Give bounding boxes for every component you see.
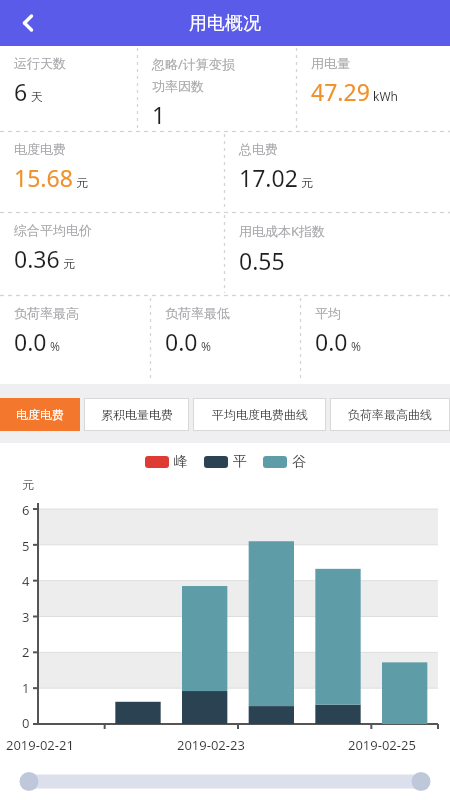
staticText: 4 (22, 572, 30, 590)
staticText: 6 (22, 501, 30, 519)
staticText: 忽略/计算变损 (152, 55, 235, 73)
staticText: 累积电量电费 (101, 407, 173, 422)
staticText: 平均电度电费曲线 (212, 407, 308, 422)
staticText: 2 (22, 643, 30, 661)
staticText: 0.0 (165, 326, 198, 357)
button[interactable]: Back (8, 3, 48, 43)
staticText: % (201, 338, 211, 354)
staticText: 3 (22, 608, 30, 626)
staticText: 平 (233, 453, 247, 471)
staticText: 元 (63, 256, 75, 271)
staticText: 0.0 (315, 326, 348, 357)
button[interactable]: 平均电度电费曲线 (193, 398, 326, 431)
staticText: 2019-02-23 (177, 736, 245, 754)
staticText: 1 (22, 679, 30, 697)
staticText: 0.0 (14, 326, 47, 357)
button[interactable]: 负荷率最高曲线 (330, 398, 450, 431)
staticText: 谷 (292, 453, 306, 471)
staticText: 电度电费 (16, 407, 64, 422)
staticText: 负荷率最高 (14, 305, 79, 321)
staticText: 0.36 (14, 243, 60, 274)
staticText: 用电量 (311, 55, 350, 71)
staticText: 5 (22, 537, 30, 555)
staticText: 2019-02-25 (348, 736, 416, 754)
staticText: 元 (22, 477, 34, 492)
button[interactable]: 电度电费 (0, 398, 80, 431)
staticText: 平均 (315, 305, 341, 321)
staticText: 47.29 (311, 76, 370, 107)
staticText: 0 (22, 714, 30, 732)
staticText: 运行天数 (14, 55, 66, 71)
staticText: 15.68 (14, 162, 73, 193)
staticText: 功率因数 (152, 78, 204, 94)
staticText: 负荷率最高曲线 (348, 407, 432, 422)
staticText: 元 (76, 175, 88, 190)
staticText: 2019-02-21 (6, 736, 74, 754)
staticText: 元 (301, 175, 313, 190)
staticText: 总电费 (239, 141, 278, 157)
staticText: 用电成本K指数 (239, 222, 326, 240)
staticText: 用电概况 (189, 12, 261, 35)
staticText: 6 (14, 76, 28, 107)
staticText: 电度电费 (14, 141, 66, 157)
staticText: 1 (152, 99, 166, 130)
staticText: kWh (373, 88, 398, 104)
staticText: 0.55 (239, 245, 285, 276)
staticText: 17.02 (239, 162, 298, 193)
staticText: 峰 (174, 453, 188, 471)
staticText: 负荷率最低 (165, 305, 230, 321)
staticText: 综合平均电价 (14, 222, 92, 238)
staticText: 天 (31, 89, 43, 104)
staticText: % (50, 338, 60, 354)
staticText: % (351, 338, 361, 354)
button[interactable]: 累积电量电费 (84, 398, 189, 431)
